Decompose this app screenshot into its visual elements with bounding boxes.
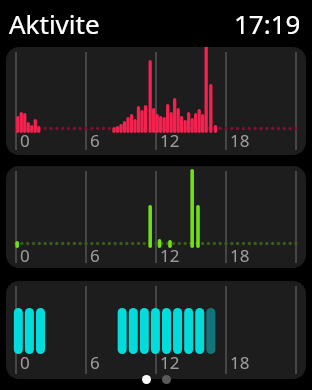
- staticText: 0: [20, 244, 30, 267]
- staticText: 17:19: [234, 6, 301, 41]
- button[interactable]: Ayakta durma grafigi: [6, 281, 306, 379]
- staticText: 0: [20, 129, 30, 152]
- staticText: 18: [230, 244, 250, 267]
- staticText: 0: [20, 351, 30, 374]
- staticText: 6: [90, 244, 100, 267]
- staticText: 18: [230, 129, 250, 152]
- button[interactable]: Egzersiz grafigi: [6, 166, 306, 268]
- staticText: 6: [90, 351, 100, 374]
- button[interactable]: Hareket grafigi: [6, 47, 306, 155]
- staticText: 12: [160, 351, 180, 374]
- staticText: 12: [160, 129, 180, 152]
- staticText: 12: [160, 244, 180, 267]
- staticText: 18: [230, 351, 250, 374]
- staticText: 6: [90, 129, 100, 152]
- staticText: Aktivite: [9, 6, 100, 41]
